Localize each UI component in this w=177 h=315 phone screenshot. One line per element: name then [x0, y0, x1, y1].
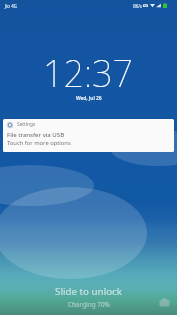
- staticText: Jio 4G: [5, 3, 17, 9]
- staticText: Slide to unlock: [55, 285, 123, 298]
- button[interactable]: Settings: [3, 119, 174, 152]
- staticText: Wed, Jul 26: [76, 95, 102, 102]
- staticText: Touch for more options: [7, 139, 71, 147]
- button[interactable]: Camera: [159, 297, 170, 308]
- staticText: Settings: [17, 121, 36, 128]
- staticText: File transfer via USB: [7, 130, 65, 138]
- staticText: Charging 70%: [68, 300, 110, 309]
- staticText: 12:37: [43, 49, 134, 98]
- staticText: 0K/s: [133, 3, 142, 9]
